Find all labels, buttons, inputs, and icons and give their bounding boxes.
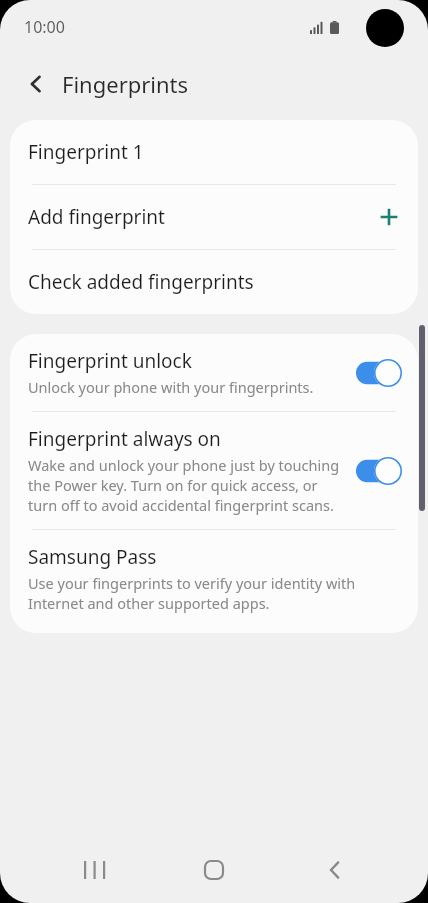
button[interactable]: Recent apps (65, 842, 121, 898)
button[interactable]: Check added fingerprints (10, 250, 418, 314)
button[interactable]: Samsung Pass (10, 530, 418, 633)
button[interactable]: Add fingerprint (10, 185, 418, 249)
staticText: Check added fingerprints (28, 269, 400, 295)
staticText: Fingerprint unlock (28, 348, 192, 374)
staticText: Fingerprints (62, 69, 189, 99)
staticText: 10:00 (24, 16, 65, 38)
staticText: Fingerprint 1 (28, 139, 400, 165)
staticText: Add fingerprint (28, 204, 378, 230)
staticText: Wake and unlock your phone just by touch… (28, 455, 344, 515)
button[interactable]: Back (307, 842, 363, 898)
button[interactable]: Toggle (356, 457, 402, 485)
button[interactable]: Fingerprint 1 (10, 120, 418, 184)
staticText: Samsung Pass (28, 544, 157, 570)
staticText: Unlock your phone with your fingerprints… (28, 377, 314, 397)
button[interactable]: Home (186, 842, 242, 898)
staticText: Fingerprint always on (28, 426, 221, 452)
staticText: Use your fingerprints to verify your ide… (28, 573, 400, 613)
button[interactable]: Fingerprint unlock (10, 334, 418, 411)
button[interactable]: Toggle (356, 359, 402, 387)
button[interactable]: Fingerprint always on (10, 412, 418, 529)
button[interactable]: Back (14, 62, 58, 106)
